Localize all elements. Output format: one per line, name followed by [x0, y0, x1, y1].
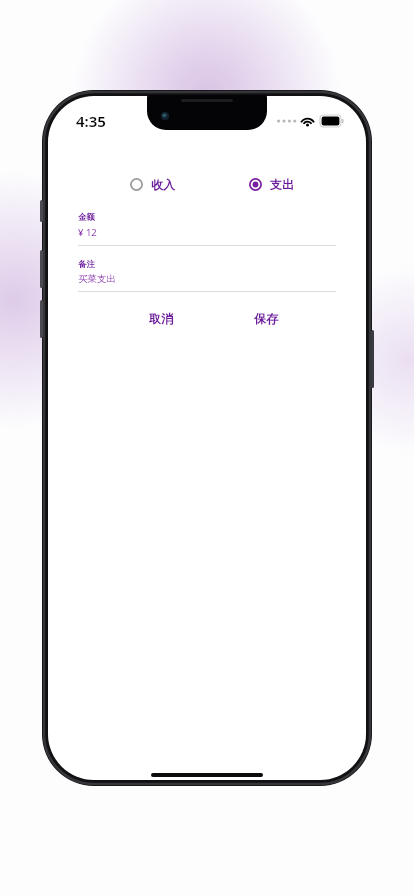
staticText: 备注	[78, 259, 95, 270]
button[interactable]: ¥ 12	[78, 226, 97, 239]
staticText: 保存	[254, 311, 278, 326]
button[interactable]: 收入	[128, 173, 177, 196]
staticText: 收入	[151, 177, 175, 192]
button[interactable]: 保存	[248, 306, 284, 331]
staticText: 4:35	[76, 111, 106, 131]
button[interactable]: 支出	[247, 173, 296, 196]
staticText: 取消	[149, 311, 173, 326]
staticText: 金额	[78, 212, 95, 223]
button[interactable]: 买菜支出	[78, 273, 116, 285]
button[interactable]: 取消	[143, 306, 179, 331]
staticText: 支出	[270, 177, 294, 192]
